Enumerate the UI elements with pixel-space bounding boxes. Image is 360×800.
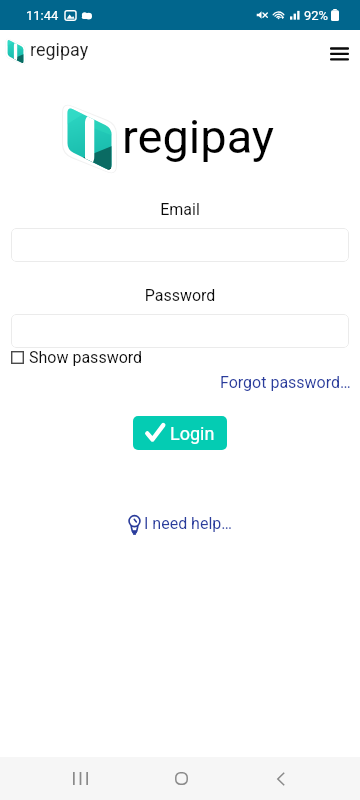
staticText: Email [0, 200, 360, 219]
staticText: 92% [304, 8, 329, 23]
button[interactable] [11, 228, 349, 262]
button[interactable] [11, 314, 349, 348]
button[interactable]: Home [157, 757, 205, 800]
staticText: Password [0, 286, 360, 305]
staticText: regipay [30, 39, 89, 60]
staticText: regipay [122, 109, 275, 164]
button[interactable]: Login [133, 416, 227, 450]
staticText: Show password [29, 348, 143, 367]
button[interactable]: Back [257, 757, 305, 800]
staticText: Login [170, 423, 215, 444]
button[interactable]: Recent apps [56, 757, 104, 800]
button[interactable]: Forgot password… [220, 373, 351, 392]
button[interactable]: Menu [322, 36, 356, 70]
staticText: I need help… [144, 514, 232, 533]
button[interactable]: Show password [11, 348, 143, 367]
staticText: 11:44 [26, 8, 59, 23]
button[interactable]: I need help… [128, 514, 232, 533]
